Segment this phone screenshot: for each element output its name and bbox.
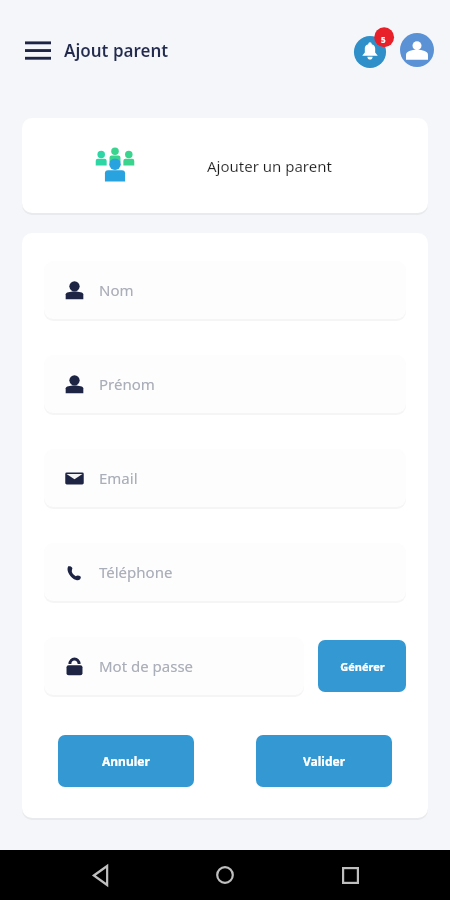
button[interactable]: Générer — [318, 640, 406, 692]
button[interactable]: Prénom — [44, 355, 406, 413]
button[interactable]: Email — [44, 449, 406, 507]
staticText: Mot de passe — [99, 656, 194, 676]
button[interactable]: Profile — [396, 29, 438, 71]
button[interactable]: Menu — [18, 30, 58, 70]
button[interactable]: Home — [205, 855, 245, 895]
staticText: Ajouter un parent — [207, 156, 332, 176]
button[interactable]: Téléphone — [44, 543, 406, 601]
button[interactable]: Ajouter un parent — [22, 118, 428, 213]
staticText: Valider — [303, 753, 346, 769]
button[interactable]: Back — [80, 855, 120, 895]
staticText: Annuler — [102, 753, 150, 769]
staticText: Téléphone — [99, 562, 173, 582]
button[interactable]: Notifications — [348, 28, 392, 72]
staticText: Générer — [340, 659, 385, 674]
button[interactable]: Recents — [330, 855, 370, 895]
staticText: Ajout parent — [64, 39, 169, 62]
staticText: Nom — [99, 280, 134, 300]
button[interactable]: Valider — [256, 735, 392, 787]
staticText: 5 — [381, 34, 386, 45]
button[interactable]: Nom — [44, 261, 406, 319]
button[interactable]: Annuler — [58, 735, 194, 787]
staticText: Email — [99, 468, 138, 488]
button[interactable]: Mot de passe — [44, 637, 304, 695]
staticText: Prénom — [99, 374, 155, 394]
